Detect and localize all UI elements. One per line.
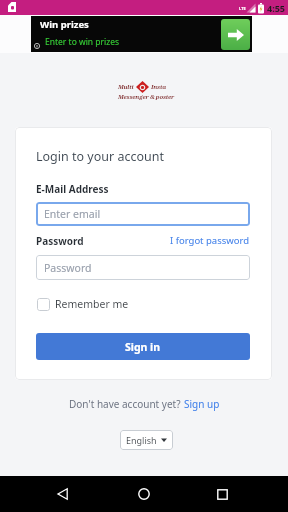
button[interactable]: English	[120, 430, 173, 450]
button[interactable]: Enter email	[36, 202, 250, 226]
staticText: Don't have account yet?	[69, 397, 184, 411]
button[interactable]: Sign up	[184, 397, 220, 411]
staticText: Enter email	[44, 207, 101, 221]
button[interactable]: Remember me	[37, 297, 129, 311]
staticText: Password	[44, 261, 92, 275]
staticText: Messenger & poster	[118, 93, 175, 101]
staticText: Sign in	[125, 340, 161, 354]
staticText: Login to your account	[36, 148, 164, 165]
staticText: Insta	[151, 83, 167, 91]
staticText: Win prizes	[40, 18, 89, 31]
button[interactable]: I forgot password	[170, 234, 250, 247]
button[interactable]: Sign in	[36, 333, 250, 360]
button[interactable]	[130, 480, 158, 508]
staticText: English	[126, 434, 157, 446]
staticText: Password	[36, 234, 84, 248]
button[interactable]: Win prizes	[31, 16, 252, 52]
staticText: LTE	[239, 6, 246, 11]
staticText: Remember me	[55, 297, 129, 311]
staticText: Enter to win prizes	[45, 36, 120, 48]
staticText: 4:55	[267, 2, 285, 14]
button[interactable]: Password	[36, 255, 250, 280]
staticText: E-Mail Address	[36, 182, 109, 196]
staticText: Multi	[118, 83, 134, 91]
button[interactable]	[208, 480, 236, 508]
button[interactable]	[48, 480, 76, 508]
